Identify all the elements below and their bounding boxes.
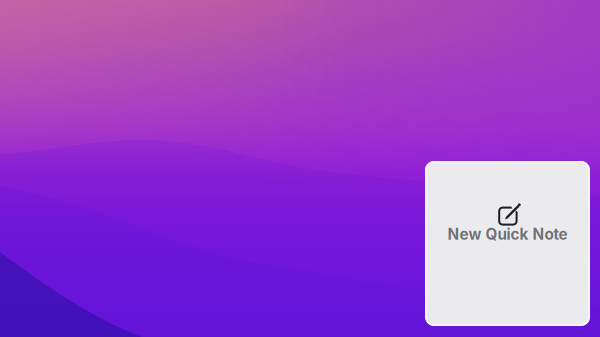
staticText: New Quick Note xyxy=(447,225,567,243)
button[interactable]: New Quick Note xyxy=(425,161,590,326)
